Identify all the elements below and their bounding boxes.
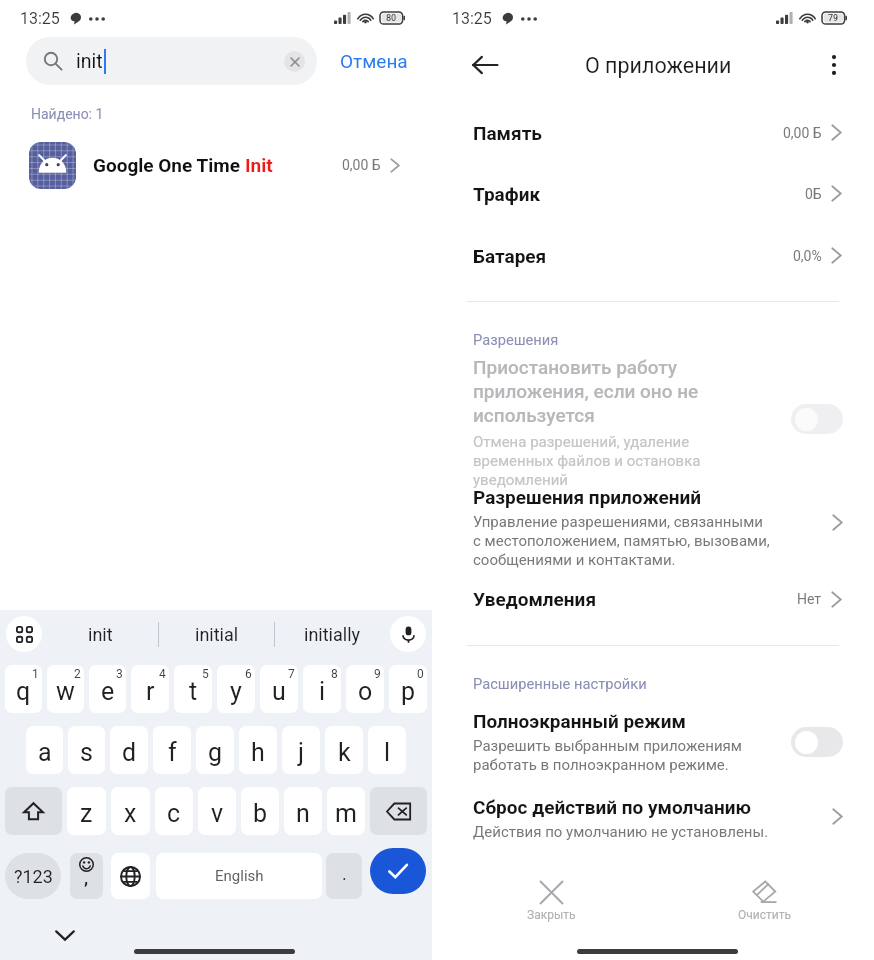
staticText: 0,00 Б — [783, 125, 822, 141]
button[interactable]: a — [26, 726, 63, 774]
staticText: f — [168, 738, 177, 767]
button[interactable] — [791, 404, 843, 434]
staticText: 7 — [288, 667, 295, 681]
staticText: Google One Time — [93, 154, 245, 176]
staticText: 5 — [202, 667, 209, 681]
button[interactable]: e — [89, 665, 126, 713]
button[interactable]: r — [131, 665, 169, 713]
staticText: Нет — [797, 591, 822, 607]
button[interactable]: u — [260, 665, 298, 713]
staticText: 6 — [245, 667, 252, 681]
button[interactable]: d — [110, 726, 148, 774]
staticText: k — [338, 738, 351, 767]
staticText: Управление разрешениями, связанными с ме… — [473, 513, 770, 568]
button[interactable]: ?123 — [5, 853, 61, 899]
staticText: Сброс действий по умолчанию — [473, 796, 751, 818]
button[interactable]: Память — [432, 102, 874, 163]
staticText: z — [80, 799, 93, 828]
button[interactable]: m — [327, 787, 365, 835]
staticText: b — [253, 799, 268, 828]
button[interactable]: Разрешения приложений — [432, 486, 874, 574]
staticText: 0,0% — [793, 248, 822, 264]
staticText: Батарея — [473, 245, 547, 267]
button[interactable]: j — [282, 726, 320, 774]
button[interactable]: h — [239, 726, 277, 774]
staticText: initially — [304, 624, 361, 645]
button[interactable]: Search — [370, 848, 426, 894]
staticText: Разрешения приложений — [473, 486, 702, 508]
button[interactable] — [791, 727, 843, 757]
staticText: 8 — [331, 667, 338, 681]
staticText: q — [16, 677, 31, 706]
button[interactable]: v — [198, 787, 236, 835]
staticText: 0Б — [805, 186, 822, 202]
button[interactable]: g — [196, 726, 234, 774]
staticText: 80 — [386, 13, 397, 24]
staticText: i — [319, 677, 326, 706]
button[interactable]: Clear — [720, 876, 808, 928]
button[interactable]: o — [346, 665, 384, 713]
button[interactable]: init — [42, 610, 158, 658]
staticText: n — [296, 799, 310, 828]
staticText: Разрешения — [473, 331, 559, 348]
staticText: h — [251, 738, 265, 767]
button[interactable]: l — [368, 726, 406, 774]
button[interactable]: Google One Time — [0, 136, 432, 194]
other: Close — [540, 881, 563, 904]
staticText: Расширенные настройки — [473, 675, 647, 692]
button[interactable]: Сброс действий по умолчанию — [432, 796, 874, 848]
button[interactable]: q — [5, 665, 42, 713]
button[interactable]: s — [68, 726, 105, 774]
button[interactable]: k — [325, 726, 363, 774]
staticText: 0,00 Б — [342, 157, 381, 173]
button[interactable]: Батарея — [432, 225, 874, 286]
button[interactable]: initially — [275, 610, 390, 658]
button[interactable]: w — [47, 665, 84, 713]
staticText: 2 — [74, 667, 81, 681]
button[interactable]: Полноэкранный режим — [432, 710, 874, 780]
staticText: ?123 — [14, 866, 53, 887]
staticText: l — [384, 738, 391, 767]
button[interactable]: Отмена — [327, 37, 420, 85]
button[interactable]: Clipboard — [6, 616, 42, 652]
button[interactable]: c — [155, 787, 193, 835]
button[interactable]: Close — [507, 876, 595, 928]
button[interactable]: Уведомления — [432, 578, 874, 620]
staticText: p — [401, 677, 416, 706]
button[interactable]: Приостановить работу приложения, если он… — [432, 356, 874, 488]
staticText: e — [101, 677, 115, 706]
button[interactable]: Emoji — [70, 853, 103, 899]
button[interactable]: y — [217, 665, 255, 713]
staticText: 1 — [32, 667, 39, 681]
button[interactable]: b — [241, 787, 279, 835]
button[interactable]: English — [156, 853, 322, 899]
button[interactable]: initial — [159, 610, 274, 658]
staticText: Трафик — [473, 183, 541, 205]
button[interactable]: Change language — [111, 853, 150, 899]
button[interactable]: . — [326, 853, 362, 899]
staticText: Init — [245, 154, 273, 176]
button[interactable]: n — [284, 787, 322, 835]
button[interactable]: t — [174, 665, 212, 713]
button[interactable]: Voice input — [390, 616, 426, 652]
staticText: 4 — [159, 667, 166, 681]
button[interactable]: p — [389, 665, 427, 713]
button[interactable]: Backspace — [370, 787, 427, 835]
staticText: 79 — [828, 13, 839, 24]
staticText: Действия по умолчанию не установлены. — [473, 823, 769, 841]
button[interactable]: Back — [466, 46, 504, 84]
staticText: m — [335, 799, 357, 828]
button[interactable]: f — [153, 726, 191, 774]
staticText: a — [38, 738, 52, 767]
button[interactable]: i — [303, 665, 341, 713]
button[interactable]: Shift — [5, 787, 62, 835]
button[interactable]: z — [67, 787, 106, 835]
staticText: 13:25 — [452, 9, 492, 28]
button[interactable]: x — [111, 787, 150, 835]
button[interactable]: Трафик — [432, 163, 874, 224]
button[interactable]: init — [26, 37, 317, 85]
button[interactable]: Clear — [284, 51, 305, 72]
staticText: c — [167, 799, 181, 828]
other: Hide keyboard — [55, 929, 75, 942]
button[interactable]: More options — [815, 46, 853, 84]
